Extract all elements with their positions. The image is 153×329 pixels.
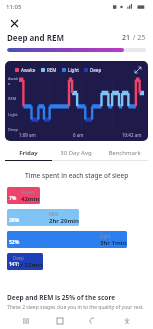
button[interactable]: 28% bbox=[7, 209, 146, 226]
staticText: 42min bbox=[21, 195, 40, 203]
button[interactable]: Benchmark bbox=[100, 149, 148, 161]
staticText: Deep bbox=[8, 127, 18, 132]
staticText: Awake bbox=[21, 67, 36, 73]
staticText: 1hr 22min bbox=[13, 261, 43, 269]
staticText: 21 bbox=[122, 33, 131, 43]
button[interactable]: Recents bbox=[19, 314, 33, 328]
staticText: / 25 bbox=[131, 33, 146, 43]
staticText: Light bbox=[8, 112, 18, 117]
staticText: Friday bbox=[19, 149, 38, 157]
staticText: REM bbox=[47, 67, 57, 73]
staticText: REM bbox=[8, 96, 17, 101]
button[interactable]: Close bbox=[6, 15, 22, 31]
staticText: Deep and REM bbox=[7, 32, 64, 43]
staticText: Light bbox=[100, 233, 111, 239]
button[interactable]: 52% bbox=[7, 231, 146, 248]
staticText: 28% bbox=[9, 217, 20, 224]
staticText: Benchmark bbox=[108, 149, 141, 157]
staticText: 30 Day Avg bbox=[60, 149, 92, 157]
staticText: 1:09 am bbox=[19, 132, 36, 138]
staticText: Time spent in each stage of sleep bbox=[25, 171, 129, 180]
button[interactable]: Accessibility bbox=[120, 314, 134, 328]
button[interactable]: Expand chart bbox=[133, 65, 142, 74]
staticText: Deep bbox=[13, 255, 25, 261]
button[interactable]: Back bbox=[86, 314, 100, 328]
staticText: 10:42 am bbox=[122, 132, 142, 138]
staticText: 11:05 bbox=[6, 3, 22, 11]
button[interactable]: 14% bbox=[7, 253, 146, 270]
staticText: REM bbox=[49, 211, 59, 217]
staticText: Light bbox=[68, 67, 79, 73]
button[interactable]: Home bbox=[53, 314, 67, 328]
staticText: 14% bbox=[9, 261, 20, 268]
button[interactable]: 7% bbox=[7, 187, 146, 204]
button[interactable]: 30 Day Avg bbox=[52, 149, 100, 161]
staticText: 52% bbox=[9, 239, 20, 246]
staticText: Deep and REM is 25% of the score bbox=[7, 293, 116, 302]
staticText: 2hr 20min bbox=[49, 217, 79, 225]
staticText: Deep bbox=[90, 67, 102, 73]
staticText: 7% bbox=[9, 195, 17, 202]
staticText: 3hr 1min bbox=[100, 239, 127, 247]
button[interactable]: Friday bbox=[5, 149, 52, 161]
staticText: 6 am bbox=[73, 132, 84, 138]
staticText: Awake bbox=[21, 189, 35, 195]
staticText: These 2 sleep stages clue you in to the … bbox=[7, 304, 144, 311]
staticText: Awake bbox=[8, 76, 19, 86]
button[interactable]: Awake bbox=[5, 61, 148, 141]
